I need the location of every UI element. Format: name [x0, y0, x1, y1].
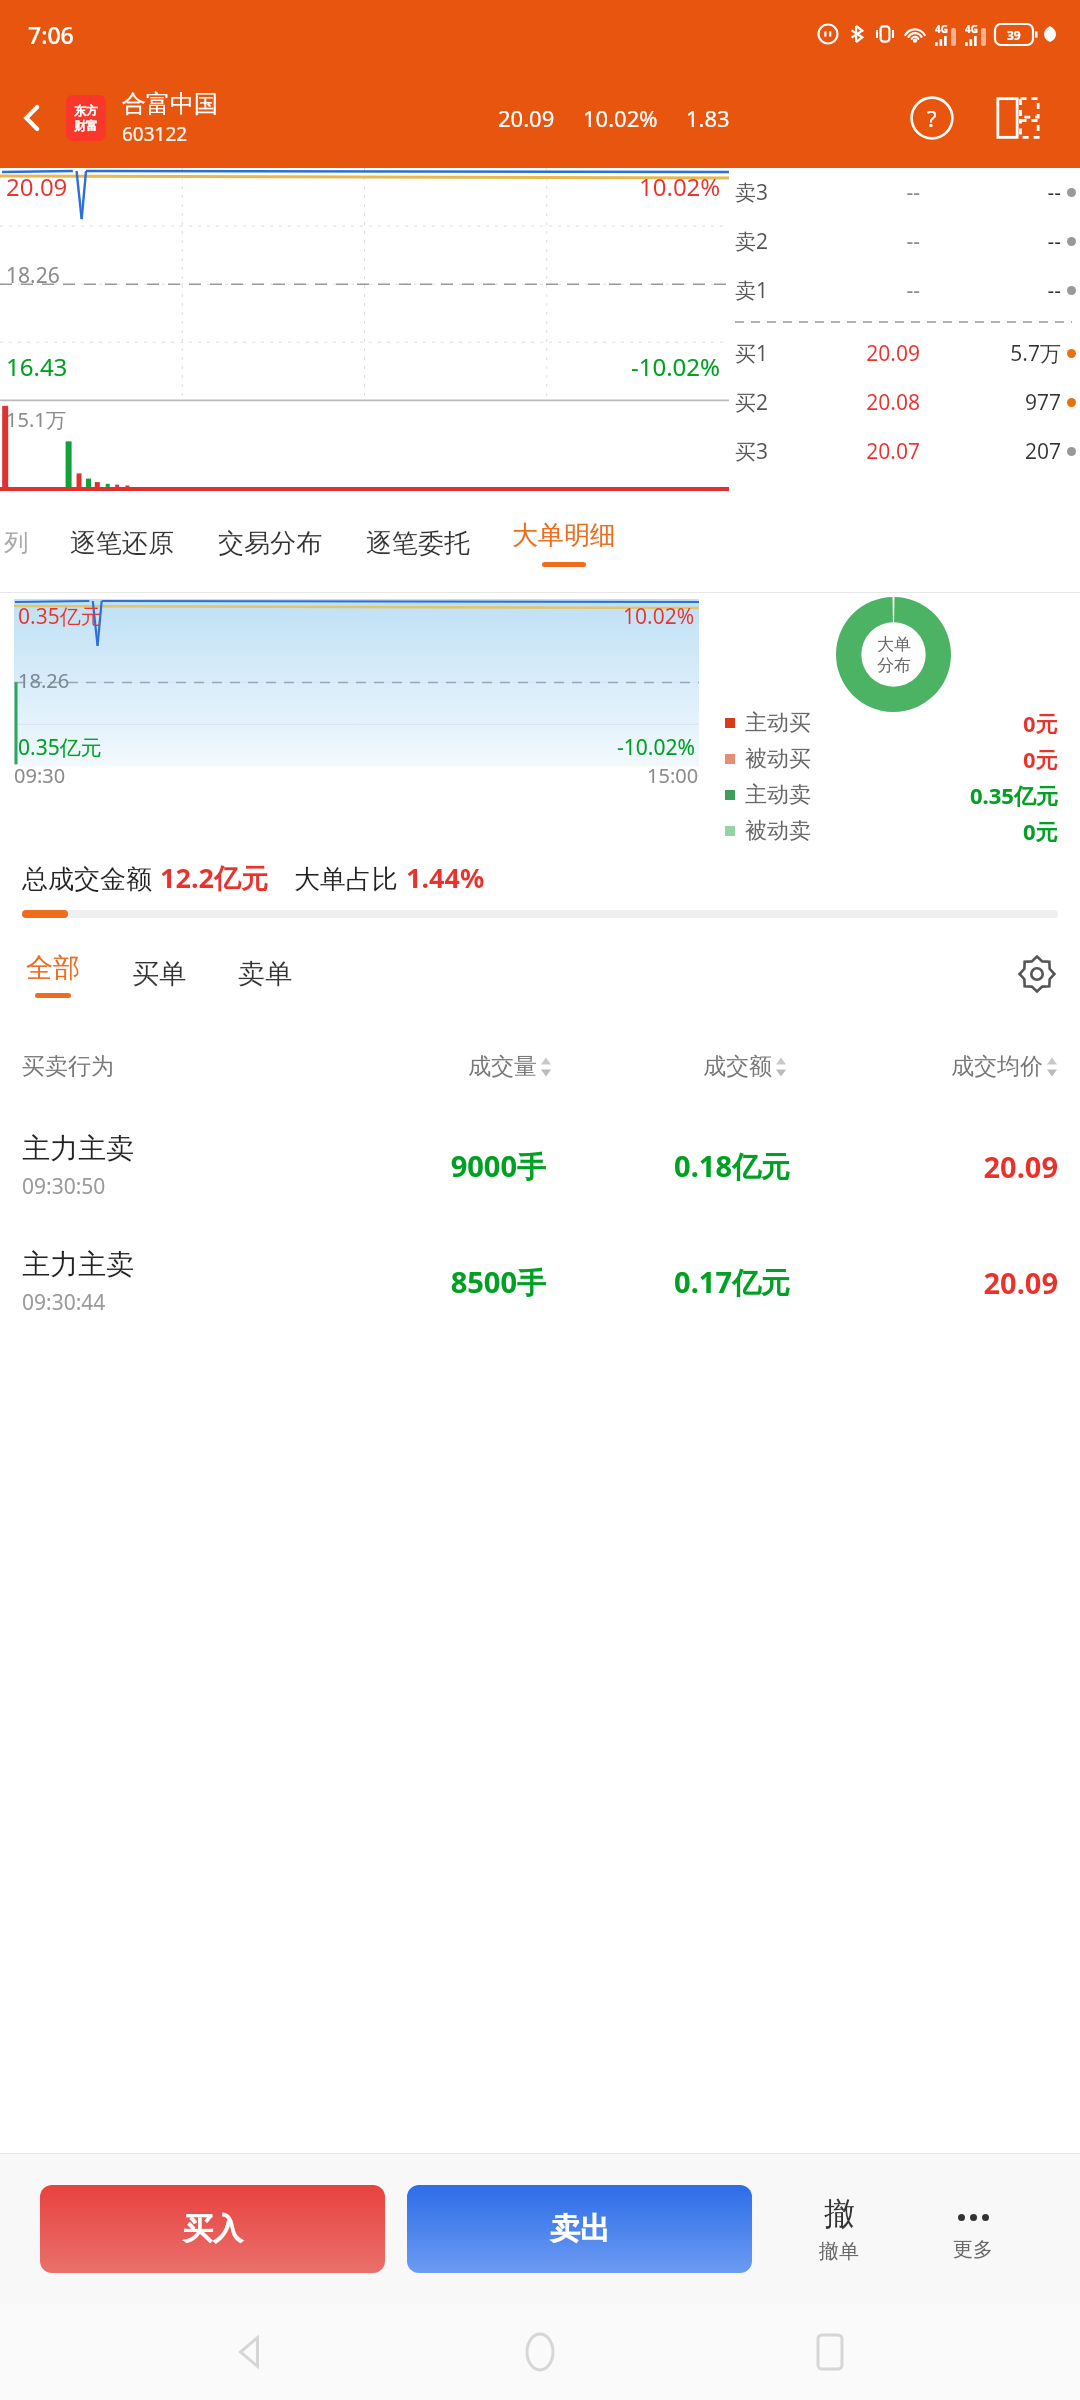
- button[interactable]: Back: [0, 86, 64, 150]
- staticText: 0.35亿元: [18, 733, 102, 762]
- button[interactable]: Help: [902, 88, 962, 148]
- staticText: 合富中国: [122, 89, 218, 119]
- staticText: 卖出: [550, 2210, 610, 2248]
- button[interactable]: 成交额: [552, 1052, 787, 1081]
- staticText: 7:06: [28, 19, 74, 50]
- button[interactable]: 买2: [735, 378, 1080, 427]
- staticText: -10.02%: [631, 350, 721, 383]
- staticText: 成交量: [468, 1052, 537, 1081]
- staticText: 东方: [74, 103, 98, 118]
- staticText: 卖3: [735, 178, 787, 207]
- button[interactable]: Back: [210, 2312, 290, 2392]
- staticText: 成交均价: [951, 1052, 1043, 1081]
- staticText: 卖2: [735, 227, 787, 256]
- button[interactable]: 卖2: [735, 217, 1080, 266]
- staticText: 大单明细: [512, 519, 616, 552]
- staticText: 主动买: [745, 709, 811, 737]
- button[interactable]: 卖单: [234, 953, 296, 995]
- staticText: ?: [927, 103, 937, 133]
- staticText: 更多: [953, 2237, 993, 2262]
- button[interactable]: 主动卖: [725, 777, 1058, 813]
- button[interactable]: 卖1: [735, 266, 1080, 315]
- staticText: 8500手: [313, 1262, 546, 1302]
- button[interactable]: 全部: [22, 947, 84, 1002]
- button[interactable]: 主力主卖: [0, 1224, 1080, 1340]
- staticText: 卖单: [238, 957, 292, 991]
- staticText: 0.35亿元: [970, 780, 1058, 810]
- button[interactable]: 成交均价: [787, 1052, 1058, 1081]
- staticText: 15:00: [647, 762, 699, 789]
- staticText: 主力主卖: [22, 1247, 134, 1282]
- staticText: 09:30: [14, 762, 66, 789]
- staticText: 0元: [1023, 708, 1058, 738]
- staticText: 10.02%: [583, 103, 658, 133]
- button[interactable]: 被动卖: [725, 813, 1058, 849]
- staticText: 被动卖: [745, 817, 811, 845]
- staticText: 9000手: [313, 1146, 546, 1186]
- staticText: 总成交金额: [22, 863, 152, 896]
- staticText: 18.26: [18, 667, 70, 694]
- staticText: 20.09: [790, 1263, 1058, 1302]
- staticText: 20.09: [498, 103, 555, 133]
- staticText: 撤: [824, 2194, 855, 2233]
- staticText: 主力主卖: [22, 1131, 134, 1166]
- button[interactable]: 买3: [735, 427, 1080, 476]
- button[interactable]: 被动买: [725, 741, 1058, 777]
- button[interactable]: 主力主卖: [0, 1108, 1080, 1224]
- staticText: 逐笔还原: [70, 527, 174, 560]
- staticText: --: [787, 227, 920, 256]
- staticText: 被动买: [745, 745, 811, 773]
- staticText: --: [787, 178, 920, 207]
- staticText: 买3: [735, 437, 787, 466]
- button[interactable]: 逐笔还原: [60, 513, 184, 574]
- staticText: 主动卖: [745, 781, 811, 809]
- button[interactable]: East Money logo: [66, 95, 106, 141]
- button[interactable]: 卖3: [735, 168, 1080, 217]
- button[interactable]: 逐笔委托: [356, 513, 480, 574]
- staticText: 12.2亿元: [160, 859, 268, 896]
- button[interactable]: Settings: [1004, 941, 1070, 1007]
- staticText: 18.26: [6, 261, 60, 290]
- staticText: 0元: [1023, 744, 1058, 774]
- staticText: 20.09: [6, 170, 68, 203]
- staticText: --: [928, 178, 1061, 207]
- button[interactable]: 撤: [772, 2194, 906, 2264]
- staticText: 20.09: [790, 1147, 1058, 1186]
- button[interactable]: 买单: [128, 953, 190, 995]
- staticText: 大单: [877, 634, 911, 655]
- button[interactable]: 卖出: [407, 2185, 752, 2273]
- staticText: 分布: [877, 655, 911, 676]
- button[interactable]: Layout: [988, 88, 1048, 148]
- button[interactable]: 成交量: [317, 1052, 552, 1081]
- staticText: 全部: [26, 951, 80, 985]
- staticText: 0.18亿元: [546, 1146, 790, 1186]
- button[interactable]: 交易分布: [208, 513, 332, 574]
- staticText: 0元: [1023, 816, 1058, 846]
- staticText: 0.17亿元: [546, 1262, 790, 1302]
- staticText: 买2: [735, 388, 787, 417]
- staticText: 1.83: [686, 103, 730, 133]
- staticText: 交易分布: [218, 527, 322, 560]
- button[interactable]: Home: [500, 2312, 580, 2392]
- staticText: 卖1: [735, 276, 787, 305]
- button[interactable]: Recents: [790, 2312, 870, 2392]
- button[interactable]: 买入: [40, 2185, 385, 2273]
- staticText: -10.02%: [617, 733, 695, 762]
- staticText: 15.1万: [6, 406, 66, 433]
- staticText: 买1: [735, 339, 787, 368]
- button[interactable]: 更多: [906, 2197, 1040, 2262]
- button[interactable]: 主动买: [725, 705, 1058, 741]
- button[interactable]: 买1: [735, 329, 1080, 378]
- staticText: 大单占比: [294, 863, 398, 896]
- staticText: 20.07: [787, 437, 920, 466]
- staticText: 20.09: [787, 339, 920, 368]
- staticText: --: [928, 276, 1061, 305]
- staticText: --: [787, 276, 920, 305]
- staticText: 09:30:44: [22, 1288, 106, 1317]
- staticText: 买入: [183, 2210, 243, 2248]
- staticText: 09:30:50: [22, 1172, 106, 1201]
- button[interactable]: 大单明细: [504, 519, 624, 567]
- staticText: 20.08: [787, 388, 920, 417]
- staticText: --: [928, 227, 1061, 256]
- staticText: 逐笔委托: [366, 527, 470, 560]
